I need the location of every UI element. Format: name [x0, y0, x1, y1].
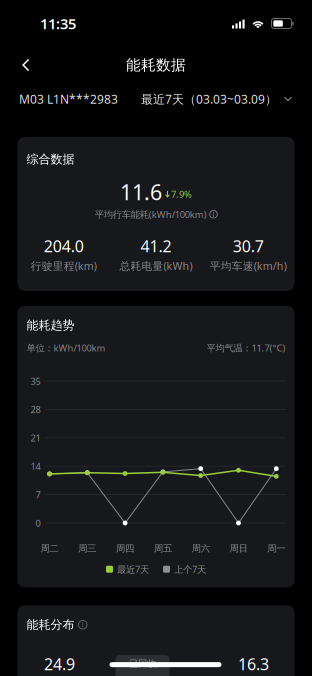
staticText: 单位：kWh/100km: [26, 342, 105, 354]
staticText: 综合数据: [26, 152, 74, 167]
staticText: 41.2: [140, 235, 171, 257]
staticText: 平均车速(km/h): [210, 259, 287, 273]
staticText: 28: [30, 403, 40, 416]
staticText: 30.7: [233, 235, 264, 257]
staticText: 能耗数据: [126, 56, 186, 74]
staticText: 11.6: [120, 178, 162, 206]
staticText: 24.9: [44, 653, 75, 675]
staticText: 能耗趋势: [26, 318, 74, 333]
staticText: 最近7天（03.03~03.09）: [141, 91, 277, 107]
staticText: 7: [35, 488, 40, 501]
button[interactable]: 最近7天（03.03~03.09）: [141, 85, 292, 113]
staticText: 已回收: [129, 658, 156, 669]
staticText: 总耗电量(kWh): [119, 259, 192, 273]
staticText: 11:35: [40, 14, 76, 33]
staticText: 7.9%: [171, 188, 192, 200]
staticText: 16.3: [238, 653, 269, 675]
staticText: i: [212, 210, 214, 219]
staticText: i: [82, 620, 84, 629]
staticText: 14: [30, 460, 40, 472]
staticText: 周六: [192, 543, 210, 554]
staticText: 周二: [40, 543, 58, 554]
staticText: 35: [30, 375, 40, 387]
staticText: 周五: [154, 543, 172, 554]
button[interactable]: Back: [7, 47, 45, 83]
staticText: 最近7天: [117, 563, 149, 575]
staticText: 周一: [267, 543, 285, 554]
staticText: 21: [30, 432, 40, 444]
staticText: M03 L1N***2983: [19, 91, 118, 107]
button[interactable]: M03 L1N***2983: [19, 85, 118, 113]
staticText: 上个7天: [174, 563, 206, 575]
staticText: 平均气温：11.7(°C): [206, 342, 285, 354]
staticText: 行驶里程(km): [31, 259, 97, 273]
staticText: 平均行车能耗(kWh/100km): [95, 208, 207, 220]
staticText: 周三: [78, 543, 96, 554]
staticText: 周日: [229, 543, 247, 554]
staticText: 周四: [116, 543, 134, 554]
staticText: 0: [35, 517, 40, 529]
staticText: 204.0: [44, 235, 84, 257]
staticText: 能耗分布: [26, 617, 74, 632]
